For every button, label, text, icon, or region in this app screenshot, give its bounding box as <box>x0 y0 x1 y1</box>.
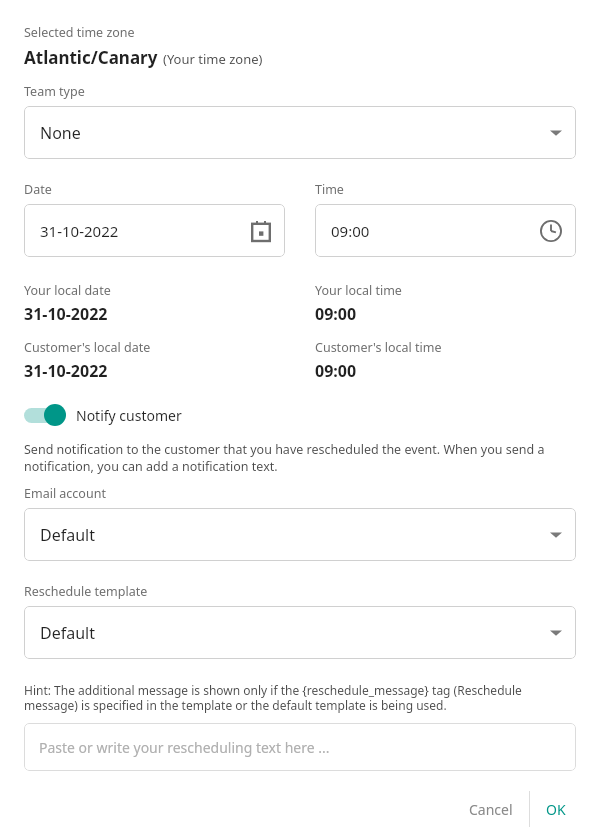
staticText: Default <box>40 622 95 644</box>
staticText: Reschedule template <box>24 583 148 600</box>
staticText: Atlantic/Canary <box>24 46 158 69</box>
button[interactable]: Paste or write your rescheduling text he… <box>24 723 576 771</box>
staticText: 09:00 <box>315 360 357 382</box>
button[interactable]: Email account selector <box>24 508 576 561</box>
staticText: Email account <box>24 485 106 502</box>
staticText: Time <box>315 181 344 198</box>
button[interactable]: Cancel <box>459 792 523 827</box>
staticText: Your local time <box>315 282 402 299</box>
staticText: 31-10-2022 <box>40 221 119 241</box>
staticText: Default <box>40 524 95 546</box>
staticText: (Your time zone) <box>163 50 263 68</box>
button[interactable]: Pick date <box>24 204 285 257</box>
staticText: Customer's local date <box>24 339 151 356</box>
staticText: Send notification to the customer that y… <box>24 441 576 474</box>
staticText: 31-10-2022 <box>24 303 108 325</box>
staticText: None <box>40 122 81 144</box>
staticText: 31-10-2022 <box>24 360 108 382</box>
staticText: Cancel <box>469 800 513 819</box>
staticText: Selected time zone <box>24 24 135 41</box>
button[interactable]: Team type selector <box>24 106 576 159</box>
staticText: OK <box>546 800 566 819</box>
staticText: 09:00 <box>315 303 357 325</box>
staticText: Customer's local time <box>315 339 442 356</box>
staticText: Notify customer <box>76 406 182 425</box>
staticText: Hint: The additional message is shown on… <box>24 682 576 713</box>
staticText: 09:00 <box>331 221 370 241</box>
staticText: Date <box>24 181 52 198</box>
staticText: Your local date <box>24 282 111 299</box>
staticText: Paste or write your rescheduling text he… <box>39 738 330 757</box>
button[interactable]: Notify customer <box>24 404 182 426</box>
button[interactable]: Reschedule template selector <box>24 606 576 659</box>
staticText: Team type <box>24 83 85 100</box>
button[interactable]: OK <box>536 792 576 827</box>
button[interactable]: Pick time <box>315 204 576 257</box>
